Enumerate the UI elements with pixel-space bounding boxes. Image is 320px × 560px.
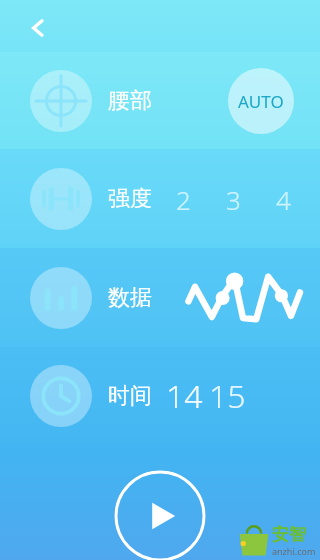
staticText: 3 (226, 182, 241, 217)
button[interactable]: 强度 (0, 149, 320, 248)
staticText: 2 (176, 182, 191, 217)
staticText: 安智 (272, 524, 306, 545)
staticText: 14 (166, 374, 203, 418)
button[interactable]: 14 (166, 374, 203, 418)
staticText: AUTO (238, 90, 284, 113)
staticText: 时间 (108, 382, 152, 410)
button[interactable]: 时间 (0, 347, 320, 444)
staticText: 数据 (108, 284, 152, 312)
button[interactable]: 15 (209, 374, 246, 418)
staticText: 腰部 (108, 87, 152, 115)
button[interactable]: 3 (216, 179, 250, 219)
button[interactable]: 腰部 (0, 52, 320, 149)
button[interactable]: 2 (166, 179, 200, 219)
staticText: anzhi.com (272, 545, 316, 557)
staticText: 15 (209, 374, 246, 418)
button[interactable]: Back (20, 10, 56, 46)
button[interactable]: Play (114, 470, 206, 560)
staticText: 4 (276, 182, 291, 217)
button[interactable]: 数据 (0, 248, 320, 347)
staticText: 强度 (108, 185, 152, 213)
button[interactable]: 4 (266, 179, 300, 219)
button[interactable]: AUTO (228, 68, 294, 134)
